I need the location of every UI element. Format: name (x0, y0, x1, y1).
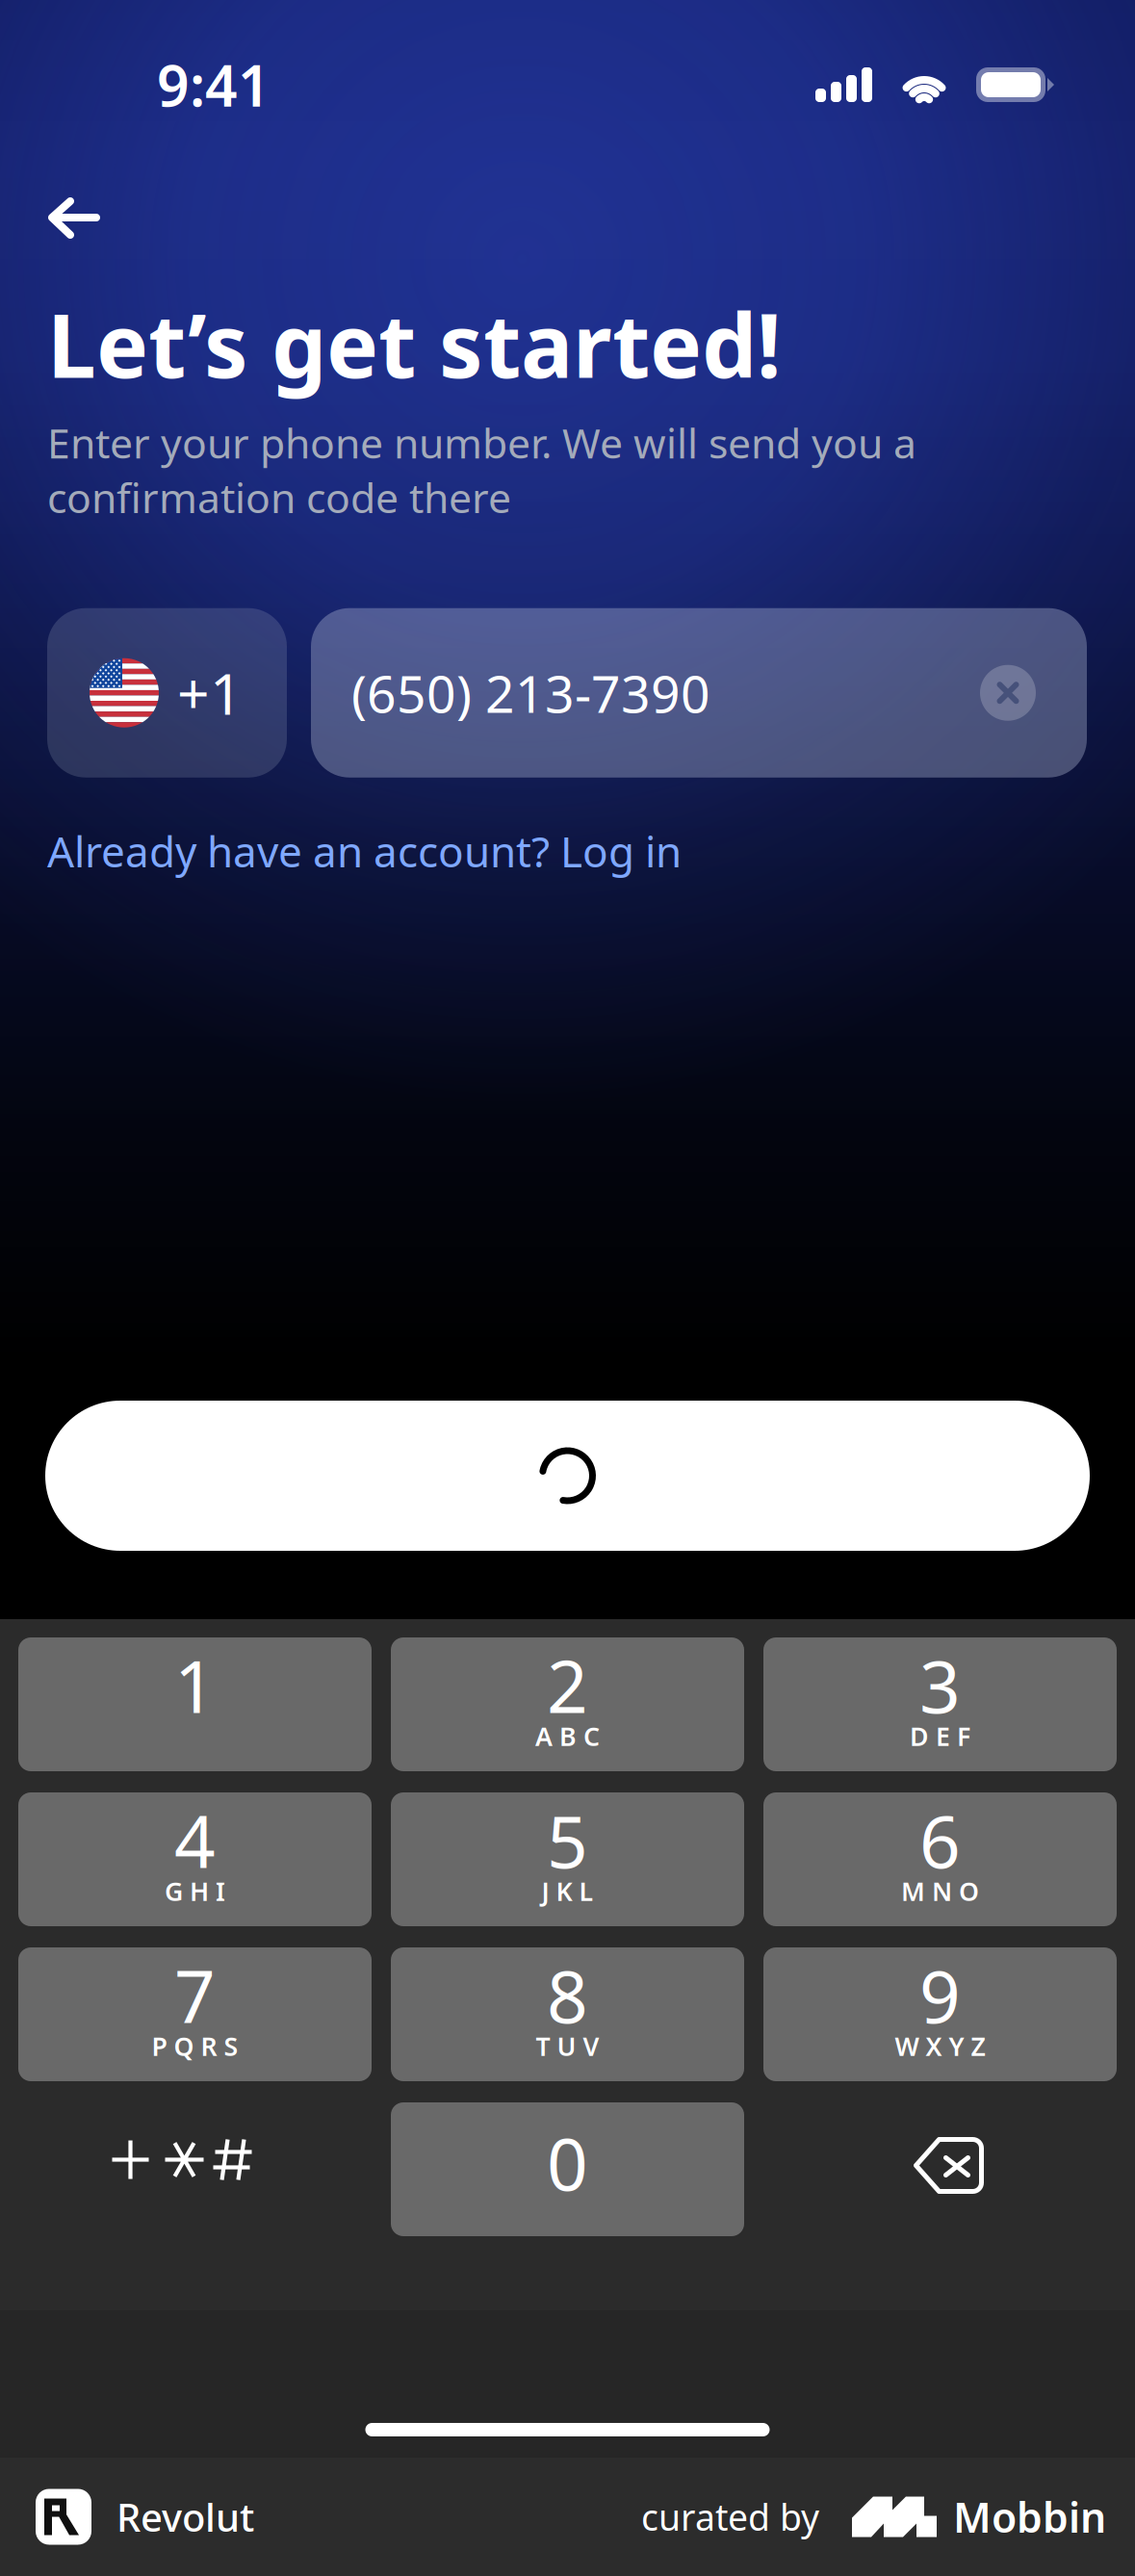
staticText: Enter your phone number. We will send yo… (47, 415, 916, 524)
staticText: 0 (547, 2115, 588, 2210)
staticText: 2 (547, 1637, 588, 1733)
staticText: P Q R S (152, 2029, 238, 2063)
button[interactable]: 5 (391, 1792, 744, 1926)
button[interactable]: 1 (18, 1637, 372, 1771)
button[interactable]: Phone number (311, 608, 1087, 778)
button[interactable]: 0 (391, 2102, 744, 2236)
button[interactable]: 2 (391, 1637, 744, 1771)
button[interactable]: 8 (391, 1947, 744, 2081)
staticText: Let’s get started! (47, 286, 782, 402)
button[interactable]: 6 (763, 1792, 1117, 1926)
button[interactable]: 7 (18, 1947, 372, 2081)
staticText: Already have an account? Log in (47, 823, 682, 879)
staticText: 5 (547, 1792, 588, 1888)
staticText: 3 (919, 1637, 961, 1733)
staticText: W X Y Z (895, 2029, 985, 2063)
staticText: 4 (174, 1792, 216, 1888)
staticText: curated by (641, 2493, 819, 2541)
staticText: Revolut (116, 2491, 254, 2542)
staticText: 9 (919, 1947, 961, 2043)
staticText: G H I (165, 1874, 225, 1908)
button[interactable]: 4 (18, 1792, 372, 1926)
staticText: +1 (177, 655, 243, 730)
button[interactable]: 3 (763, 1637, 1117, 1771)
button[interactable]: Already have an account? Log in (47, 811, 682, 891)
button[interactable]: Symbols (18, 2102, 372, 2236)
staticText: 9:41 (157, 47, 271, 122)
button[interactable]: Country code +1 (47, 608, 287, 778)
staticText: 8 (547, 1947, 588, 2043)
staticText: M N O (901, 1874, 979, 1908)
button[interactable]: Continue (45, 1401, 1090, 1551)
staticText: J K L (542, 1874, 593, 1908)
staticText: D E F (910, 1719, 970, 1753)
staticText: 6 (919, 1792, 961, 1888)
staticText: T U V (536, 2029, 599, 2063)
staticText: A B C (535, 1719, 600, 1753)
button[interactable]: Delete (763, 2102, 1117, 2236)
button[interactable]: 9 (763, 1947, 1117, 2081)
staticText: 1 (174, 1637, 216, 1733)
staticText: Mobbin (953, 2490, 1106, 2544)
button[interactable]: Back (0, 173, 139, 264)
staticText: (650) 213-7390 (351, 659, 710, 727)
staticText: 7 (174, 1947, 216, 2043)
